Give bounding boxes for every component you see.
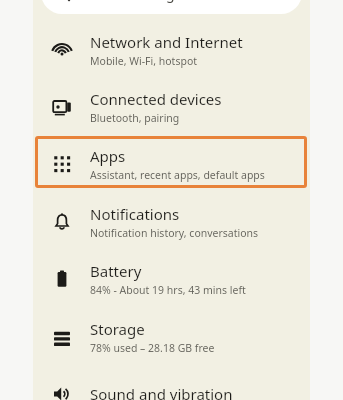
button[interactable]: Battery <box>33 253 310 305</box>
button[interactable]: Sound and vibration <box>33 368 310 400</box>
button[interactable]: Connected devices <box>33 81 310 133</box>
button[interactable]: Search settings <box>41 0 302 14</box>
button[interactable]: Network and Internet <box>33 24 310 76</box>
button[interactable]: Notifications <box>33 196 310 248</box>
staticText: Network and Internet <box>90 32 243 52</box>
button[interactable]: Apps <box>33 138 310 190</box>
staticText: Sound and vibration <box>90 384 233 400</box>
staticText: Bluetooth, pairing <box>90 111 180 125</box>
staticText: Search settings <box>81 0 182 3</box>
staticText: Mobile, Wi-Fi, hotspot <box>90 54 198 68</box>
staticText: Assistant, recent apps, default apps <box>90 168 265 182</box>
staticText: Storage <box>90 319 145 339</box>
staticText: 84% - About 19 hrs, 43 mins left <box>90 283 246 297</box>
staticText: Notifications <box>90 204 180 224</box>
staticText: 78% used – 28.18 GB free <box>90 341 215 355</box>
staticText: Battery <box>90 261 142 281</box>
staticText: Connected devices <box>90 89 222 109</box>
staticText: Notification history, conversations <box>90 226 259 240</box>
button[interactable]: Storage <box>33 311 310 363</box>
staticText: Apps <box>90 146 126 166</box>
